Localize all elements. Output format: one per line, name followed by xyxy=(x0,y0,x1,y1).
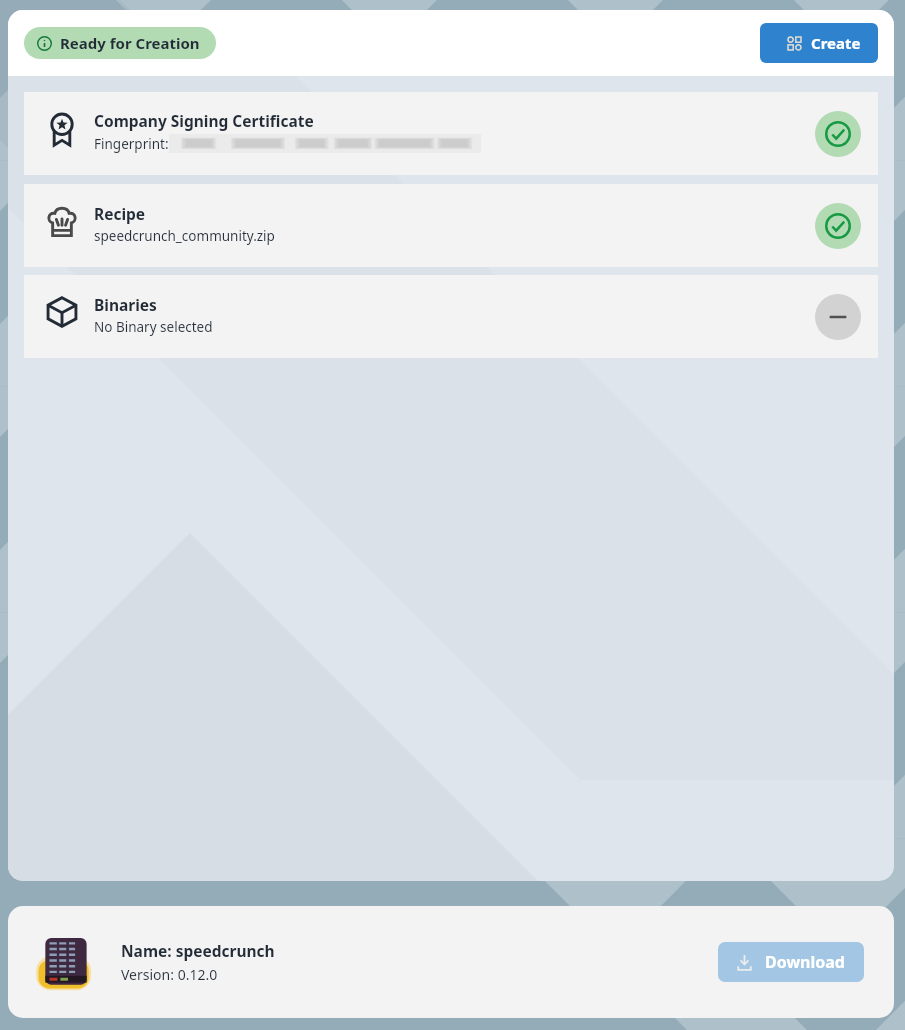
button[interactable]: Recipe xyxy=(24,184,878,267)
button[interactable]: Download xyxy=(718,942,864,982)
staticText: No Binary selected xyxy=(94,318,213,336)
staticText: Ready for Creation xyxy=(60,33,200,53)
staticText: Name: speedcrunch xyxy=(121,940,275,961)
staticText: Fingerprint: xyxy=(94,135,169,153)
staticText: Binaries xyxy=(94,294,157,315)
staticText: Recipe xyxy=(94,203,146,224)
staticText: Download xyxy=(765,951,845,973)
staticText: Company Signing Certificate xyxy=(94,110,314,131)
button[interactable]: Binaries xyxy=(24,275,878,358)
button[interactable]: Create xyxy=(760,23,878,63)
staticText: Version: 0.12.0 xyxy=(121,965,218,984)
staticText: Create xyxy=(811,33,861,53)
button[interactable]: Ready for Creation xyxy=(24,27,216,59)
button[interactable]: Company Signing Certificate xyxy=(24,92,878,175)
staticText: speedcrunch_community.zip xyxy=(94,227,275,245)
